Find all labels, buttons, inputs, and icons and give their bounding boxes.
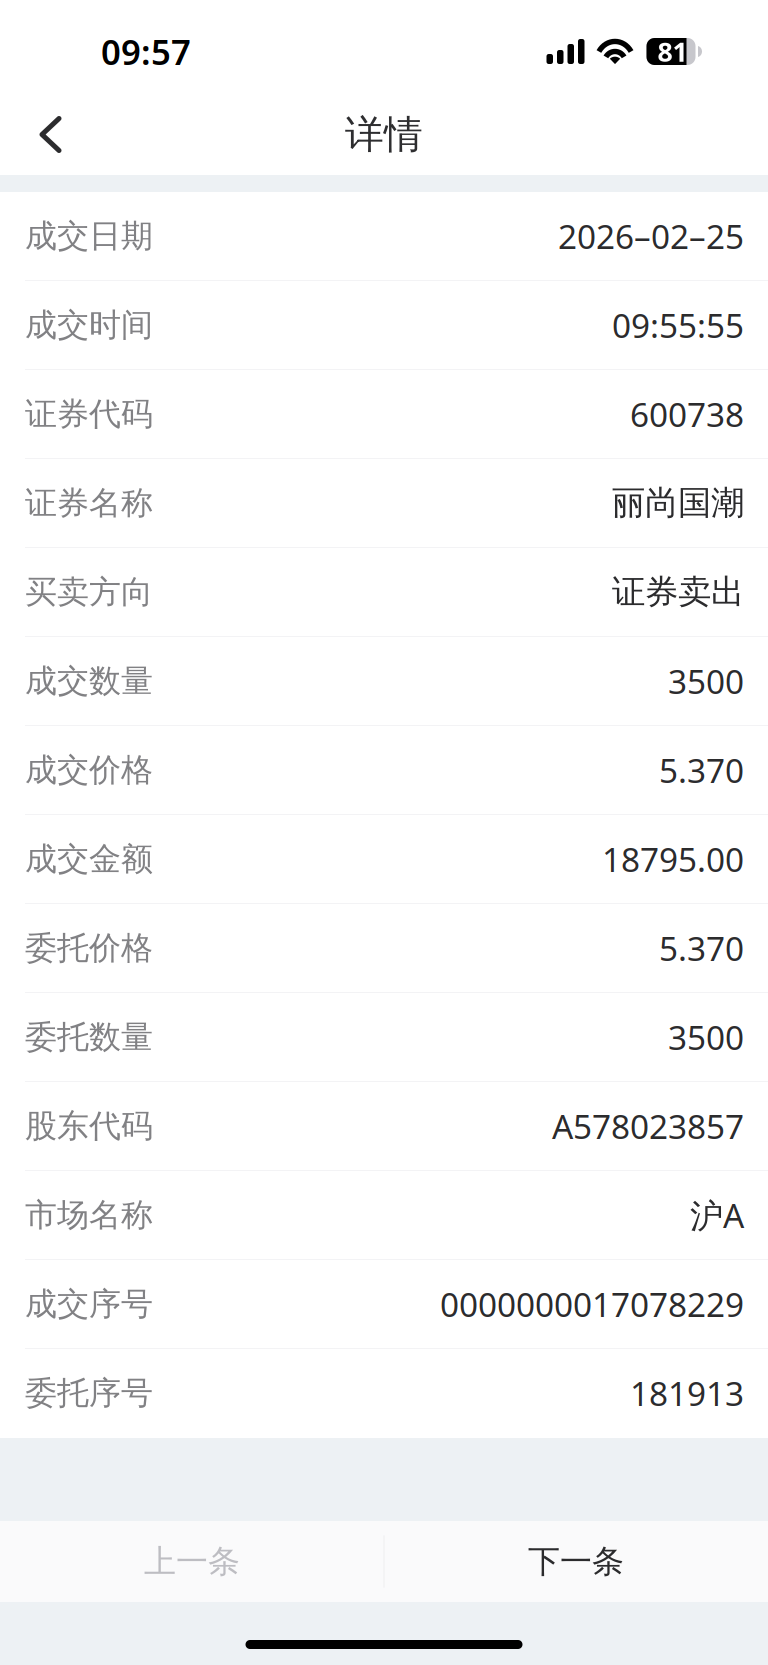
staticText: 委托序号: [25, 1373, 153, 1413]
staticText: 成交金额: [25, 839, 153, 879]
staticText: A578023857: [552, 1104, 744, 1148]
staticText: 证券名称: [25, 483, 153, 523]
staticText: 18795.00: [602, 837, 744, 881]
staticText: 市场名称: [25, 1195, 153, 1235]
staticText: 5.370: [659, 748, 744, 792]
staticText: 沪A: [690, 1193, 744, 1237]
staticText: 181913: [630, 1371, 744, 1415]
staticText: 成交序号: [25, 1284, 153, 1324]
staticText: 3500: [668, 659, 744, 703]
staticText: 详情: [345, 111, 423, 158]
staticText: 委托价格: [25, 928, 153, 968]
staticText: 证券代码: [25, 394, 153, 434]
staticText: 81: [657, 34, 687, 69]
staticText: 3500: [668, 1015, 744, 1059]
staticText: 09:57: [101, 28, 191, 74]
staticText: 上一条: [144, 1542, 240, 1581]
staticText: 600738: [630, 392, 744, 436]
staticText: 下一条: [528, 1542, 624, 1581]
staticText: 5.370: [659, 926, 744, 970]
staticText: 2026–02–25: [558, 214, 744, 258]
staticText: 0000000017078229: [440, 1282, 744, 1326]
staticText: 成交数量: [25, 661, 153, 701]
button[interactable]: 下一条: [384, 1521, 768, 1602]
staticText: 股东代码: [25, 1106, 153, 1146]
staticText: 证券卖出: [612, 571, 744, 612]
button[interactable]: Back: [0, 94, 112, 175]
staticText: 委托数量: [25, 1017, 153, 1057]
staticText: 成交日期: [25, 216, 153, 256]
staticText: 成交时间: [25, 305, 153, 345]
staticText: 成交价格: [25, 750, 153, 790]
staticText: 买卖方向: [25, 572, 153, 612]
button[interactable]: 上一条: [0, 1521, 384, 1602]
staticText: 丽尚国潮: [612, 482, 744, 523]
staticText: 09:55:55: [612, 303, 744, 347]
